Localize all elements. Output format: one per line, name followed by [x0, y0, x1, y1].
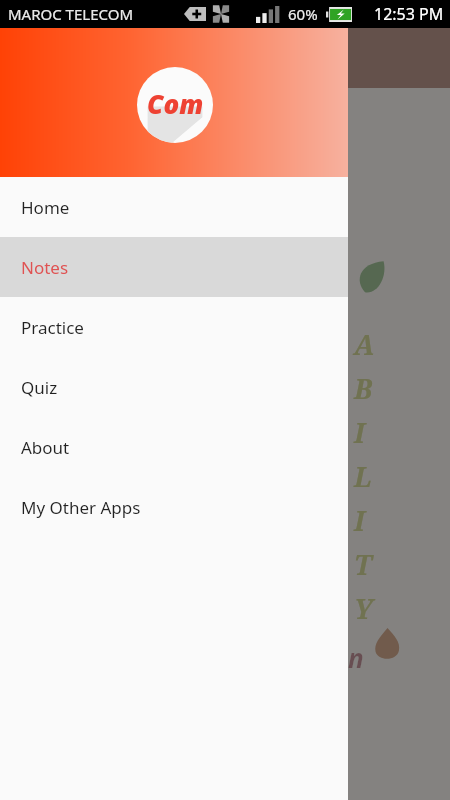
staticText: Quiz	[185, 200, 266, 246]
staticText: Com	[147, 86, 204, 121]
staticText: Quiz	[21, 376, 58, 399]
button[interactable]: My Other Apps	[0, 477, 348, 537]
button[interactable]: Quiz	[0, 357, 348, 417]
button[interactable]: Home	[0, 177, 348, 237]
staticText: 60%	[288, 4, 318, 24]
staticText: n	[348, 640, 364, 675]
staticText: Notes	[21, 256, 69, 279]
staticText: 12:53 PM	[374, 3, 444, 25]
staticText: B	[354, 370, 373, 414]
staticText: Electrical	[141, 156, 309, 202]
staticText: I	[354, 414, 365, 458]
button[interactable]: Notes	[0, 237, 348, 297]
staticText: About	[21, 436, 70, 459]
staticText: A	[354, 326, 375, 370]
button[interactable]: About	[0, 417, 348, 477]
staticText: I	[354, 502, 365, 546]
staticText: Home	[21, 196, 70, 219]
staticText: Practice	[21, 316, 84, 339]
button[interactable]: Practice	[0, 297, 348, 357]
staticText: T	[354, 546, 372, 590]
staticText: MAROC TELECOM	[8, 4, 133, 24]
staticText: L	[354, 458, 372, 502]
staticText: My Other Apps	[21, 496, 141, 519]
staticText: Y	[354, 590, 373, 634]
